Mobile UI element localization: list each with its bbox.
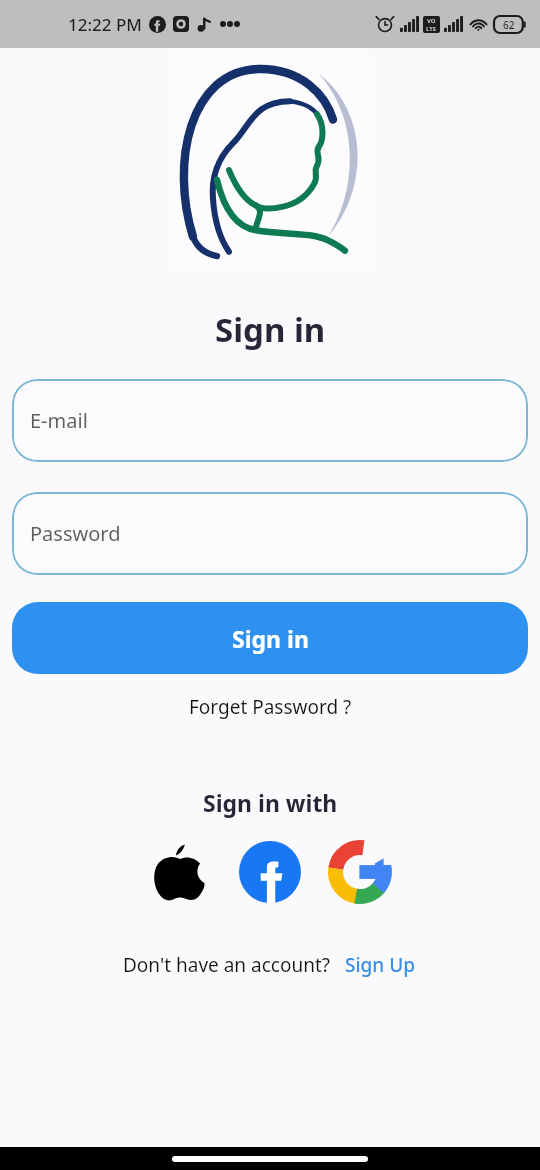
staticText: Password bbox=[30, 520, 121, 547]
button[interactable]: Sign in with Facebook bbox=[235, 837, 305, 907]
staticText: Don't have an account? bbox=[123, 952, 331, 978]
staticText: Sign in bbox=[215, 307, 326, 352]
staticText: LTE bbox=[426, 25, 437, 33]
button[interactable]: E-mail bbox=[12, 379, 528, 462]
staticText: 62 bbox=[503, 18, 515, 32]
staticText: Sign Up bbox=[345, 952, 416, 978]
button[interactable]: Sign in with Apple bbox=[145, 837, 215, 907]
staticText: 12:22 PM bbox=[68, 13, 142, 36]
button[interactable]: Sign Up bbox=[343, 949, 418, 981]
staticText: Sign in with bbox=[203, 787, 338, 818]
button[interactable]: Forget Password ? bbox=[179, 690, 362, 724]
button[interactable]: Password bbox=[12, 492, 528, 575]
staticText: Sign in bbox=[232, 623, 309, 654]
staticText: Forget Password ? bbox=[189, 694, 352, 720]
button[interactable]: Sign in with Google bbox=[325, 837, 395, 907]
staticText: E-mail bbox=[30, 407, 88, 434]
button[interactable]: Sign in bbox=[12, 602, 528, 674]
staticText: VO bbox=[427, 17, 436, 25]
